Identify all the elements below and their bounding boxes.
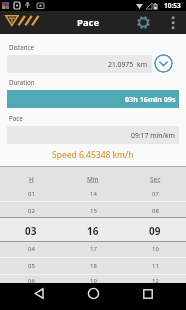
button[interactable]: H xyxy=(0,173,62,185)
button[interactable]: 09 xyxy=(124,223,186,238)
button[interactable]: 19 xyxy=(62,275,124,286)
staticText: Pace xyxy=(77,16,100,29)
button[interactable] xyxy=(133,283,163,304)
staticText: 04 xyxy=(28,245,35,253)
button[interactable] xyxy=(78,283,108,304)
staticText: 16 xyxy=(87,224,99,238)
staticText: 09:17 min/km xyxy=(131,131,175,140)
staticText: Duration xyxy=(9,78,35,86)
button[interactable]: 04 xyxy=(0,243,62,254)
staticText: 10:53 xyxy=(164,1,181,10)
button[interactable]: Sec xyxy=(124,173,186,185)
button[interactable]: 07 xyxy=(124,188,186,199)
staticText: 06 xyxy=(28,277,35,285)
staticText: Distance xyxy=(9,43,35,51)
staticText: 07 xyxy=(152,190,159,198)
button[interactable]: 03h 16min 09s xyxy=(7,90,179,108)
button[interactable] xyxy=(164,11,182,34)
staticText: 05 xyxy=(28,262,35,270)
staticText: 15 xyxy=(90,207,97,215)
button[interactable]: 18 xyxy=(62,260,124,271)
staticText: 10 xyxy=(152,245,159,253)
staticText: Speed 6.45348 km/h xyxy=(52,149,134,160)
button[interactable]: 15 xyxy=(62,205,124,216)
staticText: 18 xyxy=(90,262,97,270)
button[interactable]: Min xyxy=(62,173,124,185)
button[interactable]: 03 xyxy=(0,223,62,238)
button[interactable]: 21.0975 xyxy=(7,55,152,73)
staticText: Min xyxy=(87,175,99,184)
button[interactable]: 08 xyxy=(124,205,186,216)
staticText: 03h 16min 09s xyxy=(125,94,176,104)
staticText: 14 xyxy=(90,190,97,198)
staticText: 19 xyxy=(90,277,97,285)
staticText: Sec xyxy=(150,175,161,184)
button[interactable]: 01 xyxy=(0,188,62,199)
button[interactable]: 09:17 min/km xyxy=(7,126,179,144)
button[interactable]: 12 xyxy=(124,275,186,286)
button[interactable]: 11 xyxy=(124,260,186,271)
staticText: 09 xyxy=(149,224,161,238)
staticText: 03 xyxy=(25,224,37,238)
staticText: 08 xyxy=(152,207,159,215)
staticText: H xyxy=(29,175,34,184)
button[interactable]: 14 xyxy=(62,188,124,199)
button[interactable]: 10 xyxy=(124,243,186,254)
staticText: 21.0975 xyxy=(108,60,134,69)
staticText: 01 xyxy=(28,190,35,198)
button[interactable]: 17 xyxy=(62,243,124,254)
button[interactable]: 06 xyxy=(0,275,62,286)
button[interactable]: 16 xyxy=(62,223,124,238)
staticText: 17 xyxy=(90,245,97,253)
button[interactable] xyxy=(132,11,154,34)
staticText: km xyxy=(137,60,147,69)
button[interactable] xyxy=(24,283,54,304)
button[interactable]: 02 xyxy=(0,205,62,216)
staticText: Pace xyxy=(9,114,23,122)
staticText: 12 xyxy=(152,277,159,285)
button[interactable]: 05 xyxy=(0,260,62,271)
staticText: 02 xyxy=(28,207,35,215)
staticText: 11 xyxy=(152,262,159,270)
button[interactable] xyxy=(154,54,173,73)
